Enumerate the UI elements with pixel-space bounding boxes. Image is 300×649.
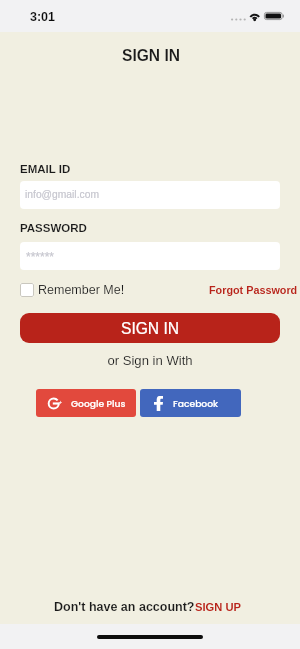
staticText: info@gmail.com xyxy=(25,189,99,201)
staticText: ****** xyxy=(26,250,55,263)
staticText: Google Plus xyxy=(71,397,126,410)
staticText: EMAIL ID xyxy=(20,163,71,176)
staticText: SIGN IN xyxy=(1,47,300,64)
button[interactable]: Remember Me! xyxy=(20,283,125,297)
staticText: Don't have an account? xyxy=(54,600,195,614)
button[interactable]: info@gmail.com xyxy=(20,181,280,209)
button[interactable]: SIGN IN xyxy=(20,313,280,343)
button[interactable]: Google Plus xyxy=(36,389,136,417)
button[interactable]: ****** xyxy=(20,242,280,270)
button[interactable]: Forgot Password xyxy=(209,284,300,296)
button[interactable]: Facebook xyxy=(140,389,241,417)
staticText: SIGN IN xyxy=(121,320,180,337)
staticText: or Sign in With xyxy=(0,353,300,368)
other: Cellular signal xyxy=(231,17,246,22)
staticText: Facebook xyxy=(173,397,219,410)
other: Wi-Fi xyxy=(246,11,259,22)
staticText: PASSWORD xyxy=(20,222,87,235)
staticText: Remember Me! xyxy=(38,283,125,297)
button[interactable]: SIGN UP xyxy=(195,601,242,614)
staticText: 3:01 xyxy=(30,10,56,24)
other: Battery xyxy=(264,12,284,20)
